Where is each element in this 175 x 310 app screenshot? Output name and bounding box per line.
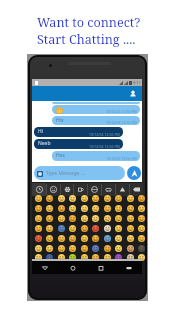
button[interactable]: Emoji xyxy=(115,245,122,252)
button[interactable]: Emoji xyxy=(115,195,122,202)
button[interactable]: Emoji xyxy=(81,205,88,212)
button[interactable]: Emoji xyxy=(127,254,134,261)
button[interactable]: Emoji xyxy=(35,205,42,212)
button[interactable]: Emoji xyxy=(115,254,122,261)
button[interactable]: Emoji xyxy=(104,235,111,242)
button[interactable]: Emoji category 2 xyxy=(60,183,74,196)
button[interactable]: Emoji xyxy=(35,195,42,202)
button[interactable]: Emoji xyxy=(138,195,145,202)
button[interactable]: Emoji xyxy=(127,205,134,212)
button[interactable]: Emoji xyxy=(58,205,65,212)
button[interactable]: Emoji xyxy=(69,225,76,232)
button[interactable]: Emoji xyxy=(69,205,76,212)
button[interactable]: Emoji xyxy=(138,254,145,261)
button[interactable]: Emoji xyxy=(92,245,99,252)
button[interactable]: Emoji xyxy=(46,195,53,202)
button[interactable]: Send xyxy=(127,166,141,180)
button[interactable]: 9:11 xyxy=(28,55,147,300)
button[interactable]: Emoji xyxy=(127,225,134,232)
button[interactable]: Emoji xyxy=(115,205,122,212)
button[interactable]: Emoji xyxy=(104,245,111,252)
button[interactable]: Emoji xyxy=(92,254,99,261)
button[interactable]: Hix xyxy=(52,116,140,125)
button[interactable]: Emoji xyxy=(138,205,145,212)
staticText: 10/12/34 12:56 PM xyxy=(89,132,120,137)
button[interactable]: Emoji xyxy=(69,235,76,242)
staticText: Neeb xyxy=(38,140,51,147)
button[interactable]: Emoji xyxy=(127,245,134,252)
button[interactable]: Emoji xyxy=(138,225,145,232)
button[interactable]: Emoji xyxy=(46,245,53,252)
button[interactable]: Emoji category 3 xyxy=(73,183,87,196)
button[interactable]: 10/12/34 12:56 PM xyxy=(52,105,140,114)
button[interactable]: Emoji xyxy=(104,205,111,212)
staticText: 9:11 xyxy=(133,80,141,85)
button[interactable]: Neeb xyxy=(34,139,123,149)
button[interactable]: Emoji xyxy=(138,235,145,242)
button[interactable]: Emoji xyxy=(46,225,53,232)
button[interactable]: Emoji xyxy=(46,205,53,212)
button[interactable]: Emoji category 0 xyxy=(32,183,46,196)
button[interactable]: Emoji xyxy=(58,235,65,242)
button[interactable]: Emoji xyxy=(92,225,99,232)
button[interactable]: Emoji xyxy=(127,195,134,202)
button[interactable]: Emoji xyxy=(35,245,42,252)
button[interactable]: Emoji xyxy=(127,235,134,242)
button[interactable]: Emoji xyxy=(115,235,122,242)
button[interactable]: Emoji xyxy=(138,245,145,252)
staticText: Hix xyxy=(56,117,64,124)
button[interactable]: Emoji xyxy=(104,195,111,202)
button[interactable]: Home xyxy=(68,263,78,273)
button[interactable]: Type Message ... xyxy=(34,166,125,180)
button[interactable]: Emoji xyxy=(35,235,42,242)
button[interactable]: Emoji xyxy=(92,235,99,242)
button[interactable]: Emoji xyxy=(35,215,42,222)
button[interactable]: Emoji xyxy=(35,254,42,261)
button[interactable]: Emoji xyxy=(69,215,76,222)
button[interactable]: Emoji xyxy=(69,254,76,261)
button[interactable]: Emoji xyxy=(81,254,88,261)
button[interactable]: Emoji xyxy=(104,215,111,222)
staticText: 10/12/34 12:56 PM xyxy=(106,156,137,161)
button[interactable]: Emoji xyxy=(81,225,88,232)
button[interactable]: Emoji xyxy=(58,225,65,232)
button[interactable]: Emoji xyxy=(104,254,111,261)
staticText: 10/12/34 12:56 PM xyxy=(89,144,120,149)
button[interactable]: Emoji xyxy=(104,225,111,232)
button[interactable]: Emoji xyxy=(35,225,42,232)
button[interactable]: Recents xyxy=(96,263,106,273)
button[interactable]: Emoji xyxy=(81,195,88,202)
button[interactable]: Emoji category 4 xyxy=(87,183,101,196)
button[interactable]: Emoji xyxy=(58,254,65,261)
button[interactable]: Emoji category 6 xyxy=(115,183,129,196)
button[interactable]: Emoji xyxy=(92,215,99,222)
button[interactable]: Emoji xyxy=(115,215,122,222)
button[interactable]: Emoji xyxy=(92,205,99,212)
button[interactable]: Keyboard xyxy=(124,263,134,273)
button[interactable]: Emoji xyxy=(58,245,65,252)
button[interactable]: Emoji xyxy=(58,195,65,202)
button[interactable]: Emoji xyxy=(81,215,88,222)
button[interactable]: Emoji xyxy=(69,195,76,202)
button[interactable]: Emoji category 1 xyxy=(46,183,60,196)
button[interactable]: Emoji xyxy=(115,225,122,232)
button[interactable]: Emoji xyxy=(92,195,99,202)
button[interactable]: Emoji xyxy=(138,215,145,222)
button[interactable]: Back xyxy=(40,263,50,273)
button[interactable]: Emoji xyxy=(81,245,88,252)
button[interactable]: Profile xyxy=(32,86,142,101)
button[interactable]: Emoji xyxy=(81,235,88,242)
button[interactable]: Emoji xyxy=(46,254,53,261)
button[interactable]: Emoji xyxy=(127,215,134,222)
button[interactable]: Profile xyxy=(127,88,138,99)
staticText: 10/12/34 12:56 PM xyxy=(106,109,137,114)
button[interactable]: Emoji xyxy=(46,235,53,242)
button[interactable]: Hxx xyxy=(52,151,140,161)
button[interactable]: Emoji category 7 xyxy=(129,183,143,196)
button[interactable]: Emoji xyxy=(69,245,76,252)
button[interactable]: Emoji category 5 xyxy=(101,183,115,196)
button[interactable]: Emoji xyxy=(58,215,65,222)
staticText: Type Message ... xyxy=(46,170,85,177)
button[interactable]: Hi xyxy=(34,127,123,137)
button[interactable]: Emoji xyxy=(46,215,53,222)
